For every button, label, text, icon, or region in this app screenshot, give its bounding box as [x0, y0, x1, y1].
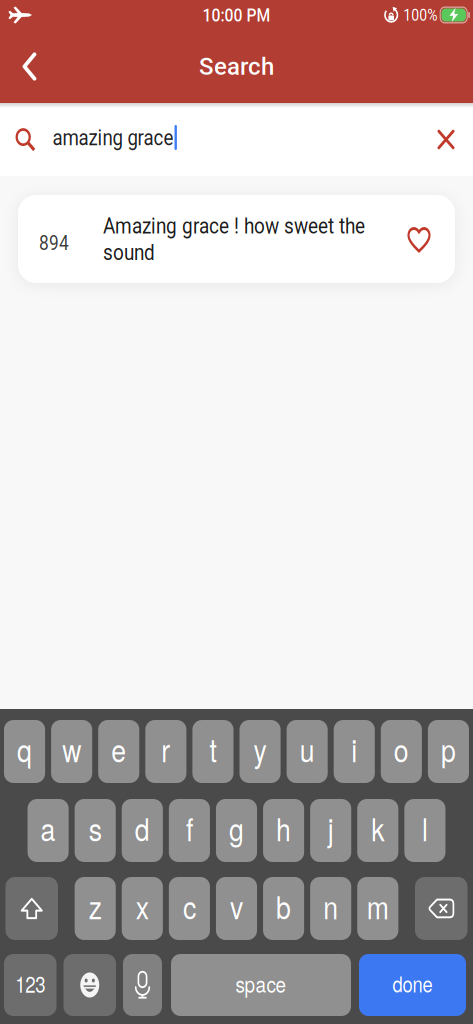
button[interactable]: Numbers: [4, 954, 56, 1016]
staticText: w: [62, 729, 81, 768]
button[interactable]: r: [145, 720, 186, 783]
staticText: space: [235, 969, 286, 996]
staticText: x: [136, 886, 149, 925]
button[interactable]: q: [4, 720, 45, 783]
staticText: 100%: [403, 7, 437, 23]
staticText: l: [422, 808, 428, 847]
staticText: p: [441, 729, 456, 768]
staticText: c: [183, 886, 196, 925]
button[interactable]: k: [357, 799, 398, 862]
button[interactable]: u: [287, 720, 328, 783]
staticText: n: [323, 886, 338, 925]
staticText: d: [135, 808, 150, 847]
button[interactable]: j: [310, 799, 351, 862]
staticText: v: [230, 886, 243, 925]
staticText: r: [161, 729, 170, 768]
staticText: q: [17, 729, 32, 768]
staticText: m: [367, 886, 389, 925]
button[interactable]: l: [404, 799, 445, 862]
button[interactable]: y: [239, 720, 281, 783]
button[interactable]: b: [263, 877, 304, 940]
button[interactable]: Dictation: [123, 954, 162, 1016]
button[interactable]: x: [122, 877, 163, 940]
staticText: 123: [15, 970, 45, 996]
button[interactable]: g: [216, 799, 257, 862]
button[interactable]: o: [381, 720, 422, 783]
button[interactable]: 894: [18, 195, 455, 283]
button[interactable]: i: [334, 720, 375, 783]
button[interactable]: h: [263, 799, 304, 862]
button[interactable]: Delete: [415, 877, 467, 940]
button[interactable]: Clear search text: [430, 122, 473, 157]
button[interactable]: a: [27, 799, 69, 862]
button[interactable]: d: [122, 799, 163, 862]
button[interactable]: p: [428, 720, 469, 783]
staticText: z: [89, 886, 102, 925]
staticText: a: [41, 808, 56, 847]
staticText: e: [111, 729, 126, 768]
staticText: y: [253, 729, 266, 768]
button[interactable]: done: [359, 954, 466, 1016]
staticText: u: [300, 729, 315, 768]
button[interactable]: m: [357, 877, 398, 940]
staticText: j: [328, 808, 334, 847]
button[interactable]: z: [75, 877, 116, 940]
button[interactable]: w: [51, 720, 92, 783]
staticText: b: [276, 886, 291, 925]
staticText: i: [351, 729, 357, 768]
button[interactable]: Search text field: [0, 103, 430, 176]
button[interactable]: space: [171, 954, 351, 1016]
button[interactable]: f: [169, 799, 210, 862]
button[interactable]: c: [169, 877, 210, 940]
staticText: t: [209, 729, 216, 768]
staticText: 10:00 PM: [202, 6, 270, 24]
button[interactable]: Favorite: [407, 229, 455, 249]
button[interactable]: t: [192, 720, 233, 783]
staticText: 894: [39, 233, 69, 253]
button[interactable]: e: [98, 720, 139, 783]
staticText: Amazing grace ! how sweet the sound: [103, 217, 365, 261]
staticText: g: [229, 808, 244, 847]
button[interactable]: s: [75, 799, 116, 862]
button[interactable]: Shift: [5, 877, 58, 940]
button[interactable]: v: [216, 877, 257, 940]
button[interactable]: Emoji: [63, 954, 116, 1016]
staticText: h: [276, 808, 291, 847]
staticText: k: [371, 808, 384, 847]
staticText: s: [89, 808, 102, 847]
button[interactable]: Back: [0, 44, 37, 88]
staticText: Search: [199, 52, 274, 80]
button[interactable]: n: [310, 877, 351, 940]
staticText: done: [392, 970, 432, 996]
staticText: f: [186, 808, 193, 847]
staticText: amazing grace: [52, 127, 173, 148]
staticText: o: [394, 729, 409, 768]
